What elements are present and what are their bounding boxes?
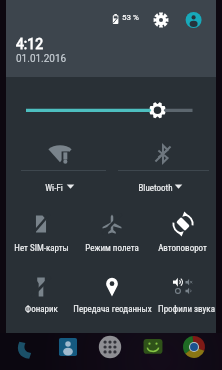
button[interactable]: Фонарик bbox=[6, 261, 76, 324]
staticText: Bluetooth bbox=[138, 183, 173, 194]
staticText: Нет SIM-карты bbox=[14, 243, 69, 254]
staticText: Режим полета bbox=[85, 243, 139, 254]
staticText: Автоповорот bbox=[158, 243, 207, 254]
staticText: Передача геоданных bbox=[73, 304, 152, 315]
button[interactable]: Brightness bbox=[20, 98, 200, 122]
staticText: 53 % bbox=[122, 13, 139, 22]
staticText: 01.01.2016 bbox=[16, 53, 67, 65]
button[interactable]: Нет SIM-карты bbox=[6, 198, 76, 261]
staticText: 4:12 bbox=[16, 36, 43, 52]
staticText: Wi-Fi bbox=[45, 183, 63, 194]
button[interactable]: Передача геоданных bbox=[76, 261, 146, 324]
staticText: Профили звука bbox=[158, 304, 215, 315]
button[interactable]: Режим полета bbox=[76, 198, 146, 261]
button[interactable]: Wi-Fi bbox=[6, 128, 111, 194]
button[interactable]: Bluetooth bbox=[111, 128, 216, 194]
button[interactable]: Профили звука bbox=[146, 261, 216, 324]
button[interactable]: Автоповорот bbox=[146, 198, 216, 261]
button[interactable]: User profile bbox=[184, 8, 206, 32]
staticText: Фонарик bbox=[25, 304, 58, 315]
button[interactable]: Settings bbox=[152, 8, 174, 32]
